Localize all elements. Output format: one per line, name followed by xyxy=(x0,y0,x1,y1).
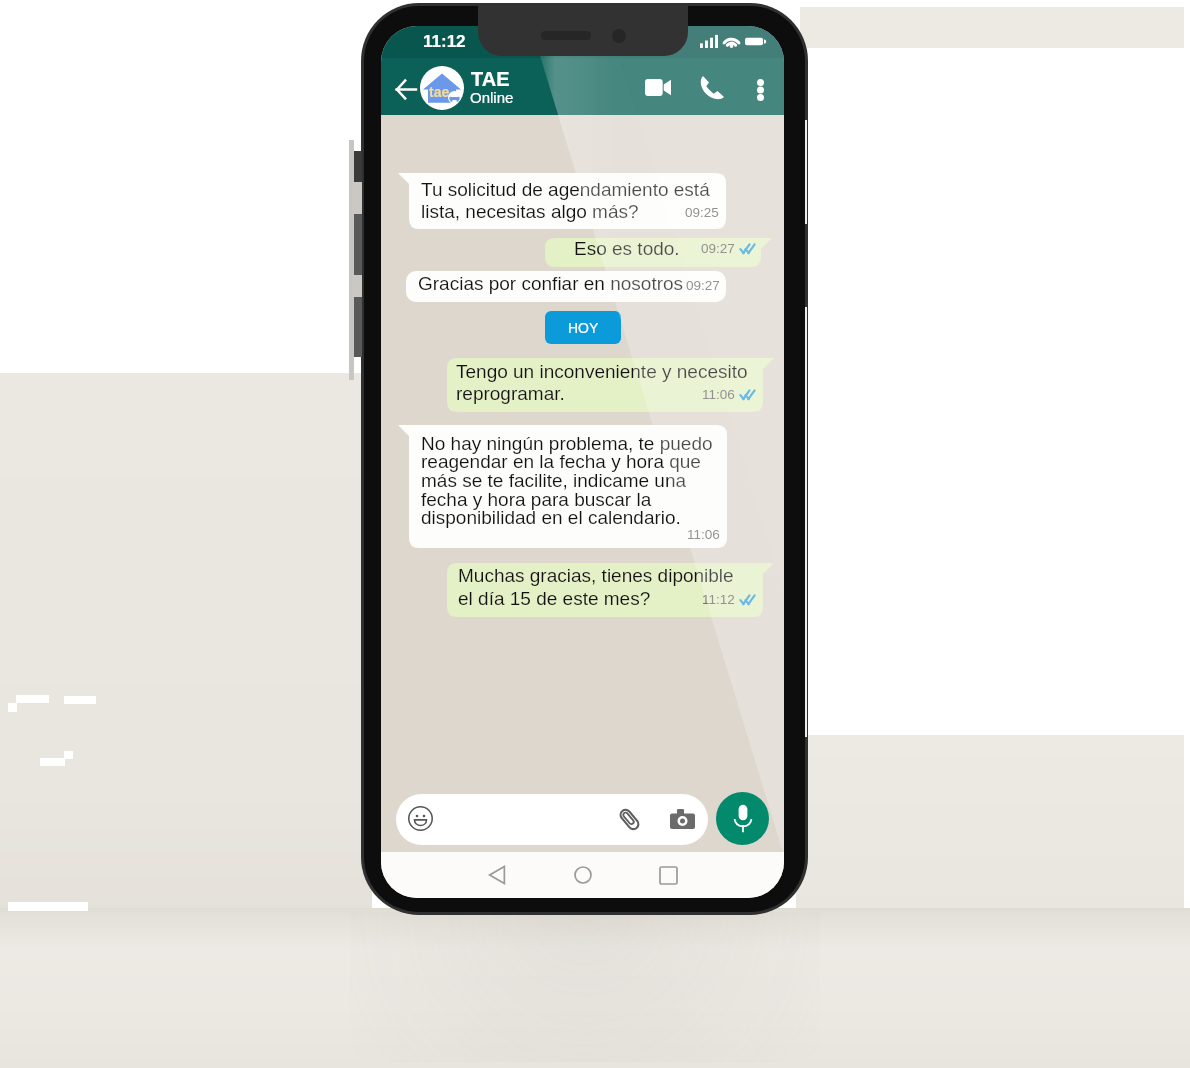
button[interactable]: Recents xyxy=(646,853,690,897)
staticText: reprogramar. xyxy=(456,383,565,404)
button[interactable]: Attach xyxy=(617,808,642,831)
button[interactable]: Emoji xyxy=(408,806,433,831)
staticText: 09:27 xyxy=(701,241,735,256)
button[interactable]: Back xyxy=(386,65,426,114)
button[interactable]: HOY xyxy=(545,311,621,344)
staticText: fecha y hora para buscar la xyxy=(421,489,652,510)
button[interactable]: Record voice message xyxy=(716,792,769,845)
staticText: tae xyxy=(429,84,450,100)
button[interactable]: Back xyxy=(475,853,519,897)
button[interactable]: No hay ningún problema, te puedo xyxy=(398,425,727,548)
button[interactable]: More options xyxy=(742,66,778,113)
staticText: disponibilidad en el calendario. xyxy=(421,507,681,528)
staticText: 11:06 xyxy=(687,527,720,542)
staticText: Online xyxy=(470,89,514,106)
button[interactable]: Eso es todo. xyxy=(545,238,772,267)
button[interactable]: Camera xyxy=(670,809,695,829)
staticText: Eso es todo. xyxy=(574,238,680,259)
staticText: lista, necesitas algo más? xyxy=(421,201,639,222)
button[interactable]: tae xyxy=(420,66,464,110)
staticText: más se te facilite, indicame una xyxy=(421,470,687,491)
button[interactable]: Video call xyxy=(629,64,687,110)
staticText: 11:06 xyxy=(702,387,735,402)
staticText: Muchas gracias, tienes diponible xyxy=(458,565,734,586)
button[interactable]: Call xyxy=(680,63,744,110)
staticText: Tengo un inconveniente y necesito xyxy=(456,361,748,382)
button[interactable]: Home xyxy=(561,853,605,897)
button[interactable]: Tengo un inconveniente y necesito xyxy=(447,358,774,412)
staticText: reagendar en la fecha y hora que xyxy=(421,451,701,472)
button[interactable]: Gracias por confiar en nosotros xyxy=(406,271,726,302)
button[interactable] xyxy=(396,794,708,845)
button[interactable]: Tu solicitud de agendamiento está xyxy=(398,173,726,229)
staticText: HOY xyxy=(568,320,599,336)
staticText: 09:25 xyxy=(685,205,719,220)
staticText: 11:12 xyxy=(702,592,735,607)
staticText: 09:27 xyxy=(686,278,720,293)
button[interactable]: Muchas gracias, tienes diponible xyxy=(447,563,774,617)
staticText: el día 15 de este mes? xyxy=(458,588,651,609)
staticText: 11:12 xyxy=(423,32,466,51)
staticText: Tu solicitud de agendamiento está xyxy=(421,179,710,200)
staticText: Gracias por confiar en nosotros xyxy=(418,273,684,294)
staticText: No hay ningún problema, te puedo xyxy=(421,433,713,454)
staticText: TAE xyxy=(471,68,510,90)
